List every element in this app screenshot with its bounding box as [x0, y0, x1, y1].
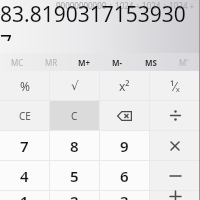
staticText: 5 — [70, 166, 79, 186]
staticText: 83.81903171539307 — [0, 0, 195, 41]
button[interactable]: Backspace — [100, 101, 149, 130]
button[interactable]: 1 — [0, 191, 49, 200]
staticText: 6 — [120, 166, 129, 186]
button[interactable]: x² — [100, 71, 149, 100]
staticText: 1 — [20, 191, 29, 200]
button[interactable]: 7 — [0, 131, 49, 160]
staticText: MR — [45, 57, 58, 68]
staticText: 2 — [70, 191, 79, 200]
button[interactable]: √ — [50, 71, 99, 100]
staticText: M+ — [78, 57, 91, 68]
staticText: % — [20, 78, 30, 94]
button[interactable]: 3 — [100, 191, 149, 200]
staticText: MS — [145, 57, 157, 68]
staticText: 9 — [120, 136, 129, 156]
button[interactable]: 5 — [50, 161, 99, 190]
button[interactable]: CE — [0, 101, 49, 130]
staticText: √ — [71, 79, 79, 93]
button[interactable]: M˅ — [167, 53, 200, 71]
button[interactable]: MR — [34, 53, 68, 71]
staticText: 8 — [70, 136, 79, 156]
button[interactable]: MC — [0, 53, 34, 71]
button[interactable]: 8 — [50, 131, 99, 160]
button[interactable]: ¹⁄ₓ — [150, 71, 200, 100]
staticText: C — [71, 109, 78, 123]
button[interactable]: 9 — [100, 131, 149, 160]
button[interactable]: M- — [101, 53, 134, 71]
staticText: MC — [11, 57, 24, 68]
staticText: M- — [112, 57, 123, 68]
staticText: x² — [119, 78, 130, 94]
button[interactable]: Add — [150, 191, 200, 200]
button[interactable]: % — [0, 71, 49, 100]
button[interactable]: M+ — [68, 53, 101, 71]
button[interactable]: 6 — [100, 161, 149, 190]
button[interactable]: C — [50, 101, 99, 130]
staticText: 7 — [20, 136, 29, 156]
staticText: 4 — [20, 166, 29, 186]
button[interactable]: 4 — [0, 161, 49, 190]
button[interactable]: Multiply — [150, 131, 200, 160]
staticText: 3 — [120, 191, 129, 200]
button[interactable]: MS — [134, 53, 167, 71]
button[interactable]: 2 — [50, 191, 99, 200]
staticText: M˅ — [179, 57, 189, 68]
staticText: 90000000000 ÷ 1024 ÷ 1024 ÷ 1024 ÷ — [56, 0, 195, 11]
button[interactable]: Divide — [150, 101, 200, 130]
staticText: CE — [19, 109, 31, 123]
button[interactable]: Subtract — [150, 161, 200, 190]
staticText: ¹⁄ₓ — [170, 78, 180, 94]
